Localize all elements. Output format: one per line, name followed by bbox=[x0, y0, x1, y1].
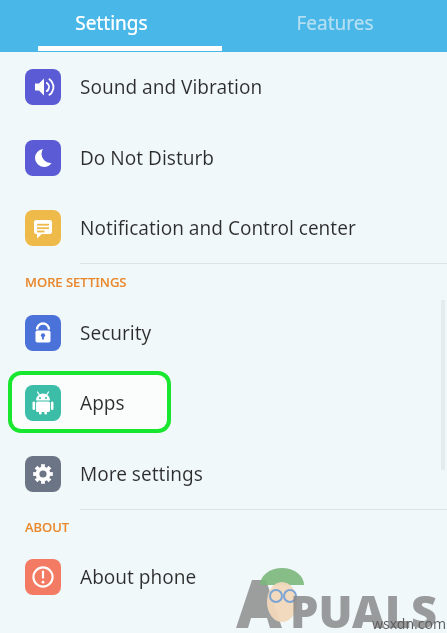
button[interactable]: More settings bbox=[0, 438, 447, 509]
staticText: About phone bbox=[80, 564, 197, 590]
staticText: Features bbox=[296, 10, 374, 36]
button[interactable]: Do Not Disturb bbox=[0, 122, 447, 193]
button[interactable]: Apps bbox=[0, 367, 447, 438]
staticText: Sound and Vibration bbox=[80, 74, 263, 100]
staticText: ABOUT bbox=[25, 518, 70, 536]
staticText: wsxdn.com bbox=[372, 614, 447, 633]
button[interactable]: Notification bbox=[0, 193, 447, 263]
staticText: Do Not Disturb bbox=[80, 145, 215, 171]
staticText: Notification and Control center bbox=[80, 215, 356, 241]
staticText: Apps bbox=[80, 390, 125, 416]
staticText: PUALS bbox=[290, 580, 437, 633]
staticText: Settings bbox=[75, 10, 148, 36]
staticText: More settings bbox=[80, 461, 203, 487]
button[interactable]: Security bbox=[0, 299, 447, 367]
button[interactable]: Settings bbox=[0, 0, 223, 52]
button[interactable]: Sound and Vibration bbox=[0, 52, 447, 122]
staticText: Security bbox=[80, 320, 152, 346]
staticText: MORE SETTINGS bbox=[25, 273, 127, 291]
button[interactable]: About phone bbox=[0, 543, 447, 611]
button[interactable]: Features bbox=[223, 0, 447, 52]
